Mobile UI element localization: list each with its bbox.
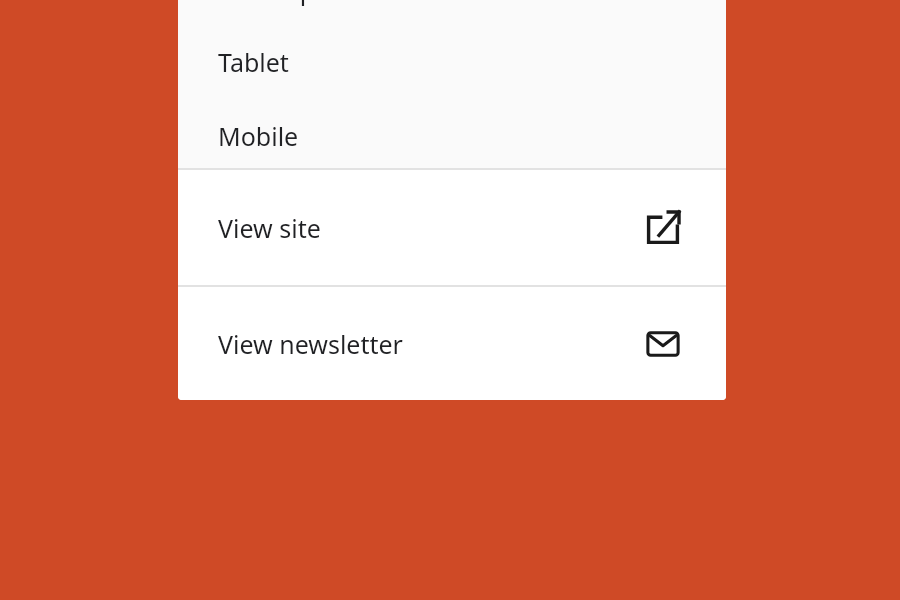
button[interactable]: Mobile (178, 103, 726, 168)
button[interactable]: View site (178, 170, 726, 285)
button[interactable]: Tablet (178, 20, 726, 103)
other: Open in new window (645, 210, 681, 246)
other: View newsletter (645, 326, 681, 362)
staticText: Tablet (218, 45, 289, 79)
staticText: View site (218, 211, 645, 245)
button[interactable]: Desktop (178, 0, 726, 20)
staticText: View newsletter (218, 327, 645, 361)
staticText: Desktop (218, 0, 316, 7)
button[interactable]: View newsletter (178, 287, 726, 400)
staticText: Mobile (218, 119, 299, 153)
